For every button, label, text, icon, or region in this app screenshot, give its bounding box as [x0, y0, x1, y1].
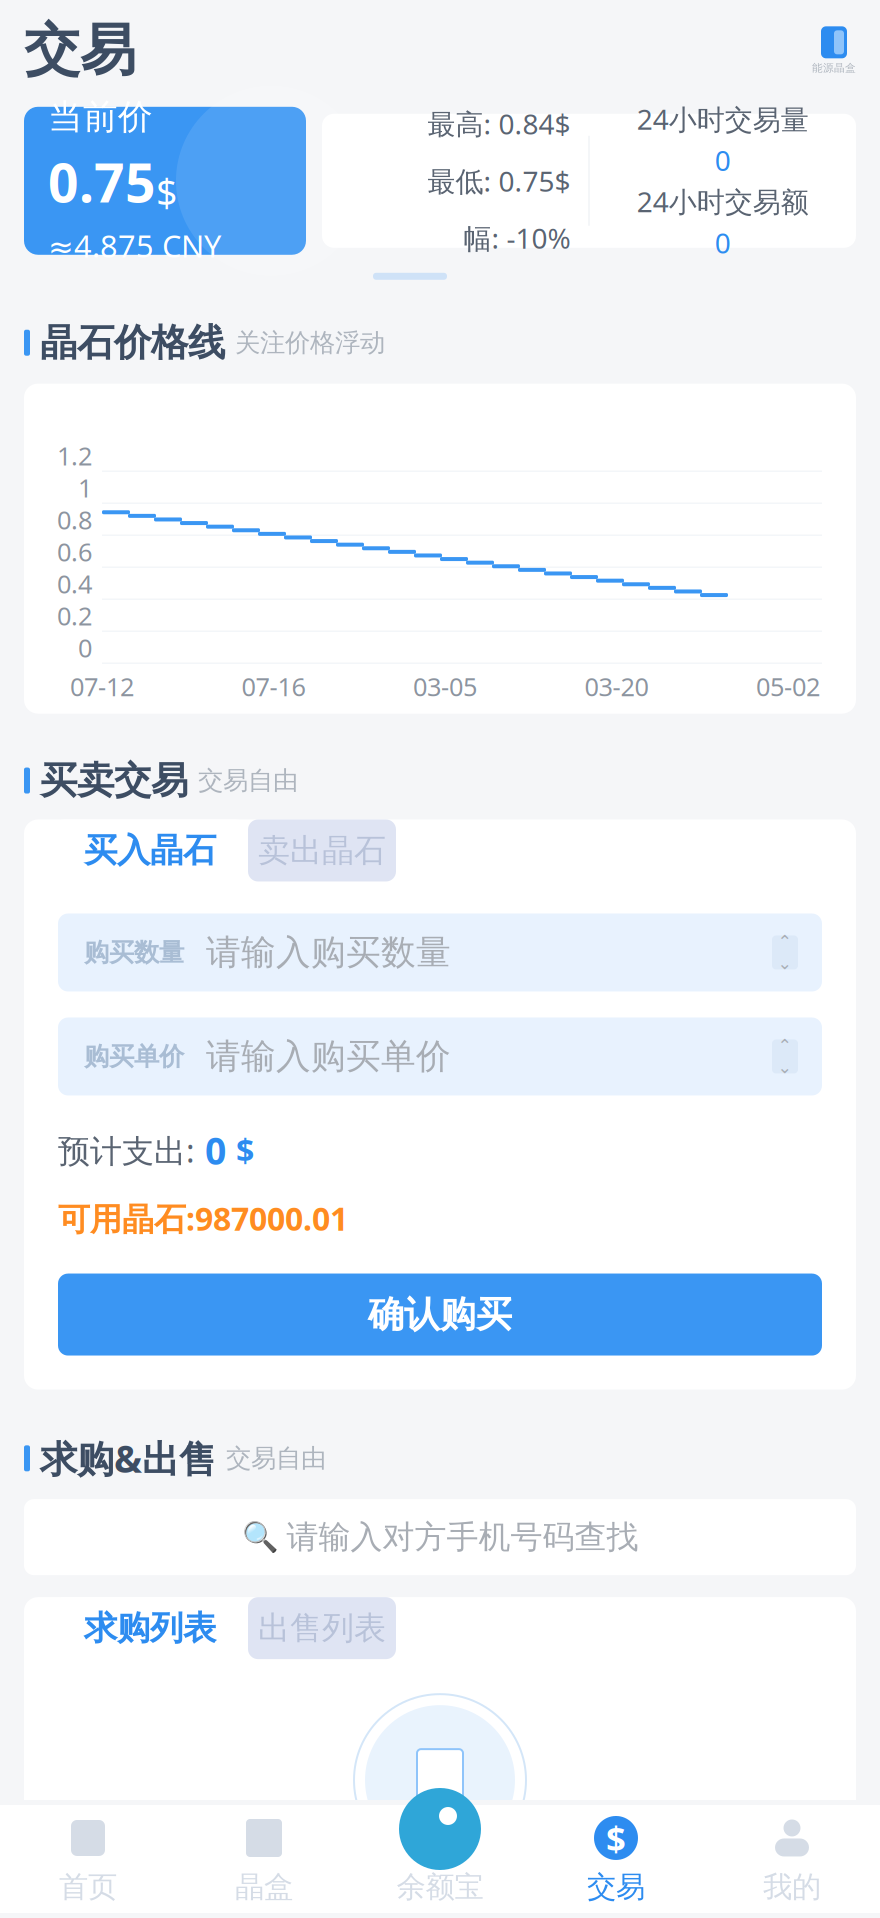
staticText: 07-16 [241, 670, 305, 703]
button[interactable]: 求购列表 [52, 1597, 248, 1659]
staticText: ⌃ [777, 1036, 792, 1055]
staticText: 出售列表 [258, 1608, 386, 1648]
staticText: ⌄ [777, 953, 792, 973]
staticText: 24小时交易额 [637, 183, 809, 220]
staticText: 关注价格浮动 [235, 327, 385, 358]
staticText: 晶石价格线 [40, 320, 225, 366]
staticText: 请输入购买单价 [206, 1035, 451, 1078]
staticText: 购买数量 [84, 937, 184, 968]
button[interactable]: 余额宝 [352, 1815, 528, 1905]
button[interactable]: 能源晶盒 [812, 26, 856, 74]
staticText: 0 [205, 1125, 226, 1175]
staticText: 确认购买 [368, 1292, 512, 1337]
staticText: 0.4 [57, 567, 92, 600]
staticText: 07-12 [70, 670, 134, 703]
button[interactable]: 余额宝 [399, 1788, 481, 1870]
staticText: 交易自由 [198, 765, 298, 796]
staticText: 晶盒 [235, 1869, 293, 1905]
staticText: 买卖交易 [40, 758, 188, 803]
staticText: 🔍 [241, 1520, 278, 1554]
staticText: 0 [78, 631, 92, 664]
button[interactable]: 购买数量 [58, 913, 822, 991]
staticText: 1 [78, 471, 92, 504]
button[interactable]: 首页 [0, 1815, 176, 1905]
staticText: 交易自由 [226, 1443, 326, 1474]
staticText: 最低: 0.75$ [427, 162, 570, 199]
button[interactable]: 晶盒 [176, 1815, 352, 1905]
staticText: 0.6 [57, 535, 92, 568]
staticText: 求购列表 [84, 1608, 216, 1649]
staticText: 0.8 [57, 503, 92, 536]
button[interactable]: $ [528, 1815, 704, 1905]
staticText: 我的 [763, 1869, 821, 1905]
staticText: 03-05 [413, 670, 477, 703]
button[interactable]: 确认购买 [58, 1274, 822, 1356]
button[interactable]: 卖出晶石 [248, 819, 396, 881]
button[interactable]: 我的 [704, 1815, 880, 1905]
button[interactable]: 买入晶石 [52, 819, 248, 881]
staticText: 买入晶石 [84, 830, 216, 871]
staticText: 首页 [59, 1869, 117, 1905]
staticText: 03-20 [584, 670, 648, 703]
staticText: $ [606, 1815, 626, 1861]
staticText: 余额宝 [396, 1869, 483, 1905]
staticText: 幅: -10% [463, 219, 570, 257]
staticText: 当前价 [48, 96, 153, 138]
staticText: 购买单价 [84, 1041, 184, 1072]
staticText: ⌃ [777, 932, 792, 951]
staticText: 最高: 0.84$ [427, 105, 570, 142]
staticText: 05-02 [756, 670, 820, 703]
staticText: 0.2 [57, 599, 92, 632]
staticText: 0 [715, 142, 731, 179]
staticText: 交易 [587, 1869, 645, 1905]
staticText: ⌄ [777, 1057, 792, 1077]
staticText: $ [236, 1129, 254, 1171]
button[interactable]: 出售列表 [248, 1597, 396, 1659]
staticText: ≈4.875 CNY [48, 225, 221, 266]
button[interactable]: 🔍 [24, 1499, 856, 1575]
staticText: 0 [715, 224, 731, 261]
staticText: 24小时交易量 [637, 100, 809, 138]
button[interactable]: 购买单价 [58, 1017, 822, 1095]
staticText: 能源晶盒 [812, 61, 856, 74]
staticText: $ [156, 167, 177, 217]
staticText: 卖出晶石 [258, 831, 386, 870]
staticText: 0.75 [48, 146, 156, 217]
staticText: 可用晶石:987000.01 [58, 1197, 348, 1240]
staticText: 交易 [24, 16, 136, 85]
staticText: 预计支出: [58, 1129, 195, 1171]
staticText: 1.2 [57, 439, 92, 472]
staticText: 请输入购买数量 [206, 931, 451, 974]
staticText: 求购&出售 [40, 1434, 216, 1483]
staticText: 请输入对方手机号码查找 [286, 1517, 638, 1557]
